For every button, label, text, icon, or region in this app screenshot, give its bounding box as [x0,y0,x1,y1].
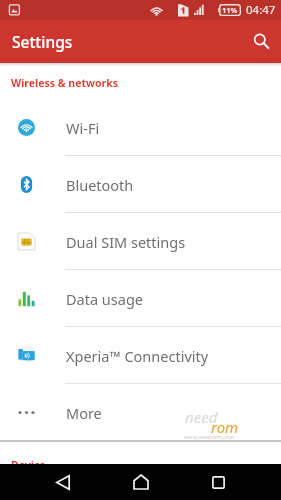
button[interactable]: Xperia™ Connectivity [0,327,281,384]
staticText: Wi-Fi [66,118,100,138]
staticText: Data usage [66,289,143,309]
staticText: rom [211,417,239,437]
button[interactable]: Home [118,464,163,500]
staticText: More [66,403,102,423]
button[interactable]: Back [40,464,85,500]
button[interactable]: Recents [196,464,241,500]
button[interactable]: Data usage [0,270,281,327]
staticText: 11% [222,5,238,15]
staticText: www.needrom.com [184,433,235,440]
staticText: Wireless & networks [11,76,118,90]
button[interactable]: Dual SIM settings [0,213,281,270]
staticText: need [185,407,218,427]
staticText: Settings [12,31,73,52]
staticText: Dual SIM settings [66,232,186,252]
staticText: Xperia™ Connectivity [66,346,209,366]
staticText: Device [11,458,46,472]
button[interactable]: More [0,384,281,440]
button[interactable]: Bluetooth [0,156,281,213]
button[interactable]: Search [243,23,279,59]
staticText: 04:47 [246,2,276,18]
staticText: Bluetooth [66,175,134,195]
button[interactable]: Wi-Fi [0,99,281,156]
